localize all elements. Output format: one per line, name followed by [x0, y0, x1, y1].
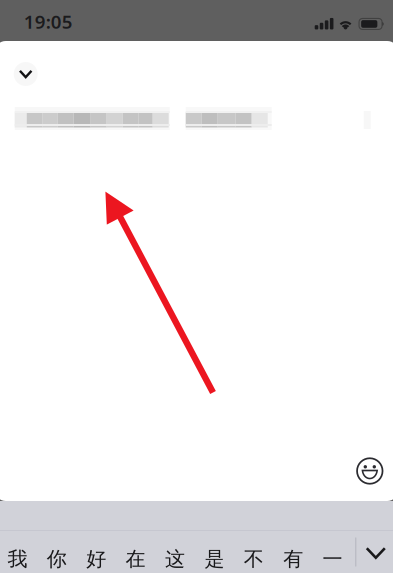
button[interactable]: 在 [116, 531, 155, 573]
staticText: 有 [283, 547, 303, 571]
button[interactable]: Emoji [350, 451, 390, 491]
button[interactable]: Hide keyboard [360, 531, 393, 573]
staticText: 19:05 [24, 9, 73, 34]
staticText: 你 [47, 547, 67, 571]
staticText: 是 [204, 547, 224, 571]
staticText: 这 [165, 547, 185, 571]
staticText: 一 [323, 547, 343, 571]
staticText: 好 [86, 547, 106, 571]
button[interactable]: 不 [234, 531, 273, 573]
button[interactable]: 有 [273, 531, 313, 573]
button[interactable]: 好 [76, 531, 116, 573]
staticText: 不 [244, 547, 264, 571]
button[interactable]: 是 [195, 531, 234, 573]
button[interactable]: 你 [37, 531, 76, 573]
button[interactable]: 我 [0, 531, 37, 573]
staticText: 我 [7, 547, 27, 571]
button[interactable]: 这 [155, 531, 195, 573]
staticText: 在 [126, 547, 146, 571]
button[interactable]: Collapse [8, 57, 44, 91]
button[interactable]: 一 [313, 531, 352, 573]
